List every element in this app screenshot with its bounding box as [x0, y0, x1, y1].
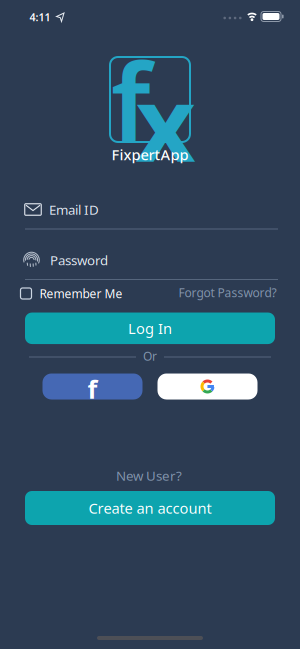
- staticText: Email ID: [49, 201, 99, 218]
- button[interactable]: Forgot Password?: [178, 284, 276, 300]
- staticText: f: [111, 29, 151, 171]
- staticText: Create an account: [88, 498, 211, 518]
- button[interactable]: [157, 373, 257, 399]
- staticText: Or: [143, 348, 157, 364]
- staticText: New User?: [116, 467, 182, 484]
- button[interactable]: Password: [23, 245, 279, 281]
- staticText: FixpertApp: [111, 145, 188, 164]
- staticText: Log In: [128, 319, 172, 338]
- button[interactable]: Email ID: [23, 194, 279, 231]
- staticText: 4:11: [29, 10, 50, 24]
- button[interactable]: f: [42, 373, 142, 399]
- button[interactable]: Log In: [25, 313, 275, 344]
- staticText: Remember Me: [39, 285, 122, 301]
- button[interactable]: Create an account: [25, 491, 275, 525]
- staticText: Forgot Password?: [178, 284, 276, 300]
- staticText: x: [135, 52, 195, 190]
- staticText: f: [87, 372, 97, 406]
- button[interactable]: Remember Me: [20, 285, 122, 301]
- staticText: Password: [50, 251, 108, 269]
